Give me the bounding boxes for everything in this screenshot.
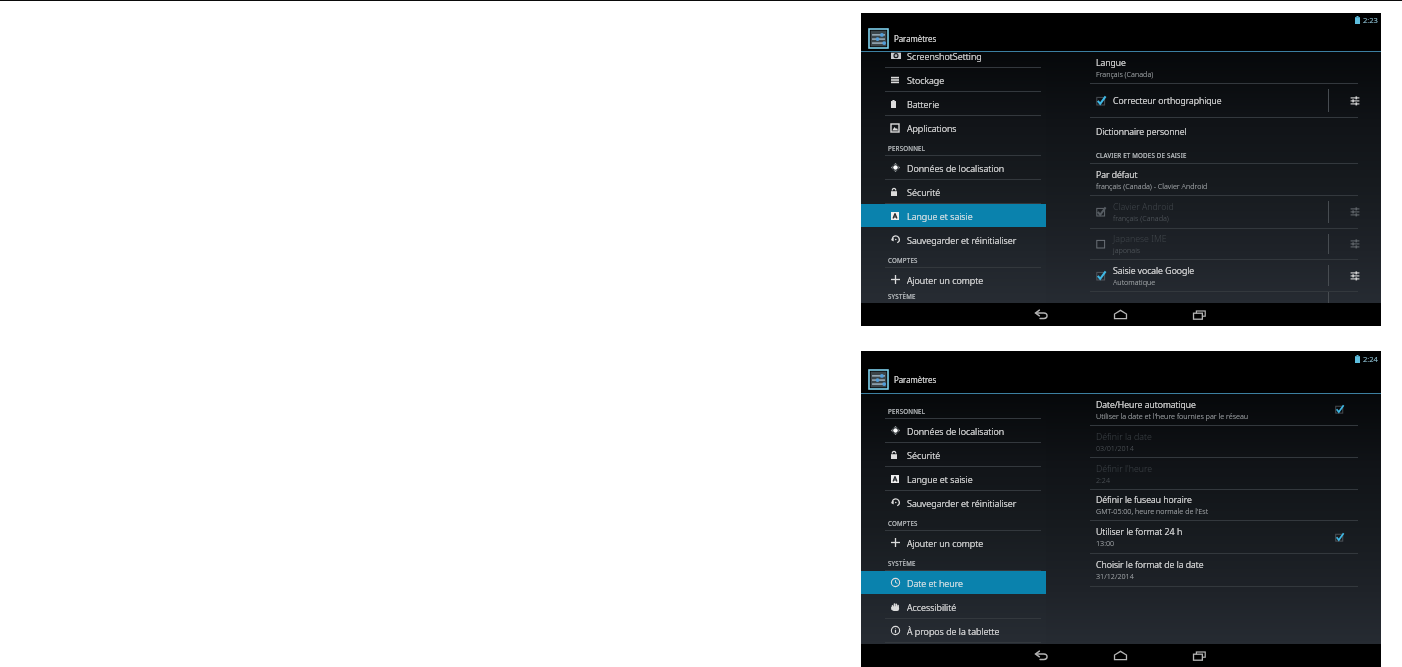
button[interactable]: À propos de la tablette [861,619,1046,642]
button[interactable]: Japanese IME [1046,229,1381,259]
button[interactable]: Utiliser le format 24 h [1046,521,1381,553]
staticText: Dictionnaire personnel [1096,126,1187,138]
staticText: Japanese IME [1113,233,1167,245]
staticText: ScreenshotSetting [907,50,982,62]
button[interactable]: Configure [1329,260,1381,291]
button[interactable]: Back [1023,644,1059,667]
staticText: Automatique [1113,277,1156,287]
staticText: 2:24 [1363,354,1378,364]
staticText: Utiliser le format 24 h [1096,526,1183,538]
staticText: Sécurité [907,186,941,198]
staticText: COMPTES [888,519,918,527]
staticText: Date et heure [907,577,963,589]
staticText: Définir l'heure [1096,463,1153,475]
button[interactable]: Sécurité [861,180,1046,203]
button[interactable]: Choisir le format de la date [1046,554,1381,586]
staticText: Ajouter un compte [907,274,984,286]
staticText: Stockage [907,74,945,86]
staticText: Paramètres [894,33,937,44]
staticText: Sauvegarder et réinitialiser [907,234,1017,246]
button[interactable]: Back [1023,303,1059,326]
staticText: Choisir le format de la date [1096,559,1204,571]
staticText: SYSTÈME [888,292,916,300]
staticText: Données de localisation [907,162,1005,174]
staticText: japonais [1113,245,1141,255]
button[interactable]: Définir la date [1046,426,1381,457]
staticText: Saisie vocale Google [1113,265,1195,277]
button[interactable]: Langue et saisie [861,467,1046,490]
button[interactable]: Dictionnaire personnel [1046,118,1381,146]
staticText: Définir la date [1096,431,1152,443]
staticText: PERSONNEL [888,144,926,152]
staticText: PERSONNEL [888,407,926,415]
button[interactable]: Ajouter un compte [861,531,1046,554]
button[interactable]: Recent apps [1181,303,1217,326]
button[interactable]: Correcteur orthographique [1046,84,1381,117]
button[interactable]: Stockage [861,68,1046,91]
staticText: 13:00 [1096,538,1115,548]
staticText: GMT-05:00, heure normale de l'Est [1096,506,1209,516]
staticText: Définir le fuseau horaire [1096,494,1192,506]
button[interactable]: Date et heure [861,571,1046,594]
button[interactable]: Langue [1046,52,1381,83]
staticText: Sauvegarder et réinitialiser [907,497,1017,509]
staticText: Langue [1096,57,1126,69]
staticText: Français (Canada) [1096,69,1154,79]
button[interactable]: Données de localisation [861,419,1046,442]
staticText: Données de localisation [907,425,1005,437]
staticText: SYSTÈME [888,559,916,567]
staticText: Accessibilité [907,601,957,613]
staticText: Applications [907,122,957,134]
staticText: français (Canada) [1113,213,1169,223]
button[interactable]: Accessibilité [861,595,1046,618]
staticText: Paramètres [894,374,937,385]
staticText: 03/01/2014 [1096,443,1134,453]
staticText: 2:24 [1096,475,1111,485]
staticText: Batterie [907,98,940,110]
button[interactable]: Home [1102,303,1138,326]
button[interactable]: Home [1102,644,1138,667]
staticText: Utiliser la date et l'heure fournies par… [1096,411,1249,421]
staticText: Ajouter un compte [907,537,984,549]
staticText: Sécurité [907,449,941,461]
button[interactable]: Clavier Android [1046,196,1381,228]
staticText: 2:23 [1363,15,1378,25]
button[interactable]: Sécurité [861,443,1046,466]
button[interactable]: Recent apps [1181,644,1217,667]
button[interactable]: Définir le fuseau horaire [1046,490,1381,520]
staticText: COMPTES [888,256,918,264]
button[interactable]: Ajouter un compte [861,268,1046,291]
staticText: Correcteur orthographique [1113,95,1222,107]
staticText: Langue et saisie [907,210,973,222]
staticText: À propos de la tablette [907,625,1000,637]
button[interactable]: Par défaut [1046,164,1381,195]
button[interactable]: Applications [861,116,1046,139]
button[interactable]: Sauvegarder et réinitialiser [861,491,1046,514]
staticText: CLAVIER ET MODES DE SAISIE [1096,151,1187,159]
staticText: Langue et saisie [907,473,973,485]
button[interactable]: Définir l'heure [1046,458,1381,489]
button[interactable]: Configure [1329,196,1381,228]
staticText: Clavier Android [1113,201,1174,213]
button[interactable]: ScreenshotSetting [861,52,1046,67]
button[interactable]: Données de localisation [861,156,1046,179]
button[interactable]: Langue et saisie [861,204,1046,227]
staticText: Date/Heure automatique [1096,399,1196,411]
staticText: français (Canada) - Clavier Android [1096,181,1208,191]
button[interactable]: Configure [1329,84,1381,117]
staticText: 31/12/2014 [1096,571,1134,581]
button[interactable]: Configure [1329,229,1381,259]
button[interactable]: Date/Heure automatique [1046,394,1381,425]
staticText: Par défaut [1096,169,1138,181]
button[interactable]: Batterie [861,92,1046,115]
button[interactable]: Sauvegarder et réinitialiser [861,228,1046,251]
button[interactable]: Saisie vocale Google [1046,260,1381,291]
